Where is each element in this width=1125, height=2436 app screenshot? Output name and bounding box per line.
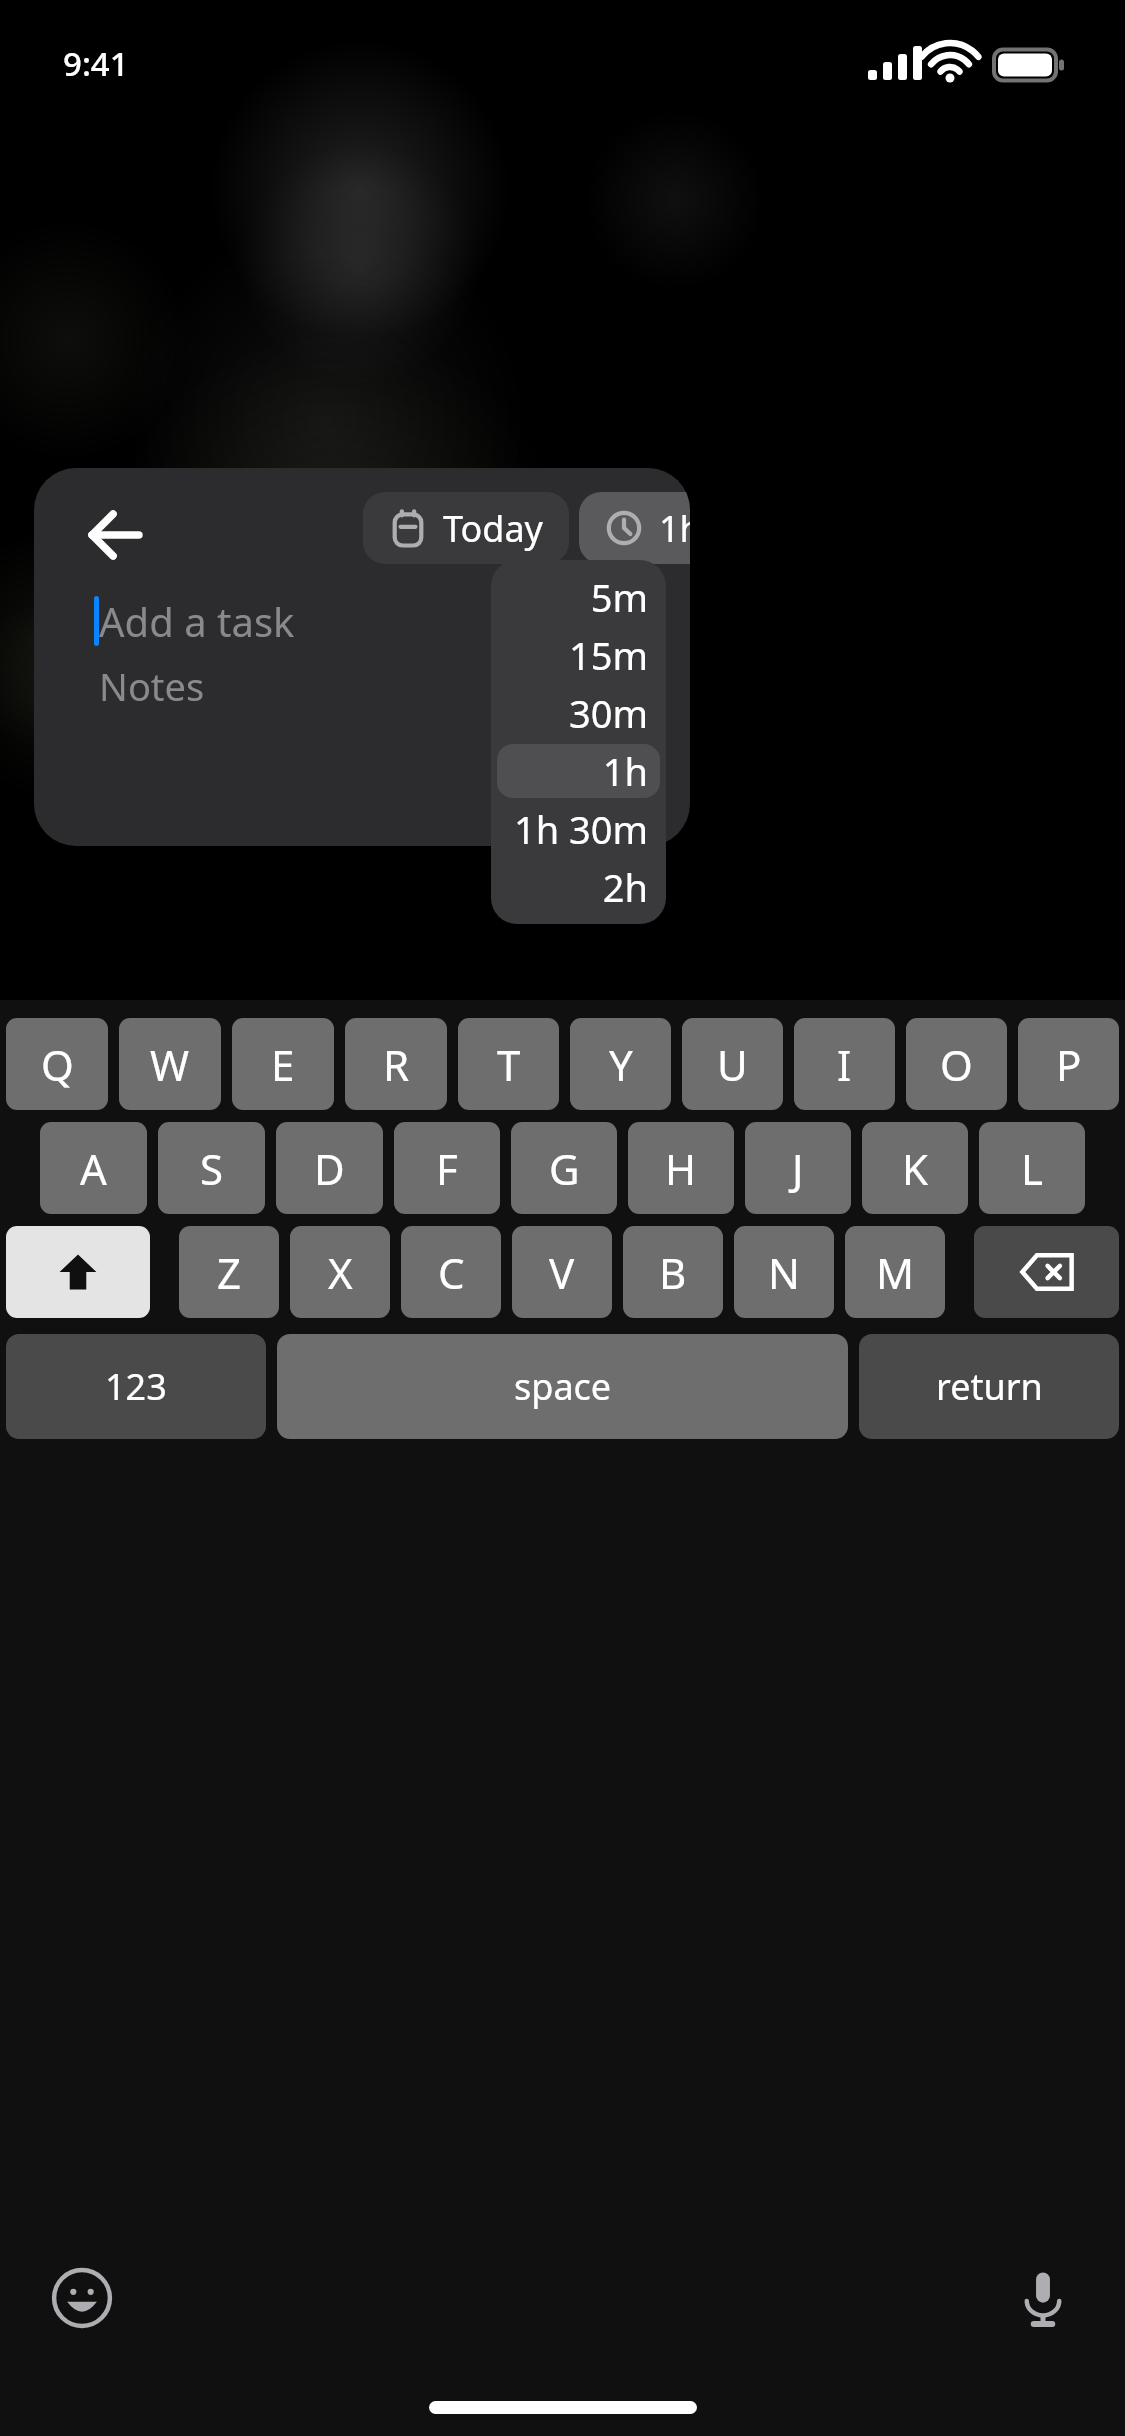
button[interactable]: 1h <box>579 492 690 564</box>
staticText: space <box>514 1362 612 1411</box>
button[interactable]: O <box>906 1018 1007 1110</box>
staticText: W <box>150 1036 190 1093</box>
button[interactable]: C <box>401 1226 501 1318</box>
button[interactable]: L <box>979 1122 1085 1214</box>
staticText: K <box>902 1140 928 1197</box>
button[interactable]: Notes <box>99 660 205 712</box>
staticText: 5m <box>590 571 648 623</box>
button[interactable]: Emoji <box>32 2248 132 2348</box>
button[interactable]: M <box>845 1226 945 1318</box>
button[interactable]: I <box>794 1018 895 1110</box>
button[interactable]: J <box>745 1122 851 1214</box>
staticText: 1h <box>602 745 648 797</box>
staticText: G <box>549 1140 580 1197</box>
button[interactable]: B <box>623 1226 723 1318</box>
staticText: P <box>1056 1036 1082 1093</box>
button[interactable]: P <box>1018 1018 1119 1110</box>
button[interactable]: space <box>277 1334 848 1439</box>
button[interactable]: W <box>119 1018 221 1110</box>
button[interactable]: 1h 30m <box>497 802 660 856</box>
staticText: R <box>383 1036 410 1093</box>
button[interactable]: 30m <box>497 686 660 740</box>
button[interactable]: Shift <box>6 1226 150 1318</box>
staticText: Z <box>217 1244 242 1301</box>
button[interactable]: H <box>628 1122 734 1214</box>
staticText: N <box>768 1244 800 1301</box>
button[interactable]: Today <box>363 492 569 564</box>
staticText: T <box>497 1036 521 1093</box>
staticText: X <box>328 1244 353 1301</box>
staticText: 2h <box>602 861 648 913</box>
button[interactable]: Back <box>68 488 162 582</box>
button[interactable]: V <box>512 1226 612 1318</box>
button[interactable]: F <box>394 1122 500 1214</box>
button[interactable]: E <box>232 1018 334 1110</box>
button[interactable]: K <box>862 1122 968 1214</box>
staticText: J <box>792 1140 804 1197</box>
staticText: U <box>717 1036 748 1093</box>
button[interactable]: T <box>458 1018 559 1110</box>
staticText: B <box>659 1244 687 1301</box>
staticText: E <box>271 1036 295 1093</box>
button[interactable]: 5m <box>497 570 660 624</box>
staticText: 123 <box>105 1362 167 1411</box>
staticText: L <box>1021 1140 1044 1197</box>
staticText: Y <box>609 1036 633 1093</box>
button[interactable]: 15m <box>497 628 660 682</box>
staticText: 15m <box>568 629 648 681</box>
staticText: S <box>200 1140 224 1197</box>
staticText: Add a task <box>99 594 295 648</box>
button[interactable]: N <box>734 1226 834 1318</box>
staticText: Q <box>41 1036 74 1093</box>
button[interactable]: A <box>40 1122 147 1214</box>
staticText: D <box>314 1140 345 1197</box>
staticText: H <box>665 1140 697 1197</box>
button[interactable]: return <box>859 1334 1119 1439</box>
staticText: Today <box>443 504 543 553</box>
button[interactable]: Backspace <box>974 1226 1119 1318</box>
staticText: O <box>940 1036 973 1093</box>
staticText: C <box>438 1244 465 1301</box>
staticText: return <box>936 1362 1043 1411</box>
button[interactable]: Z <box>179 1226 279 1318</box>
staticText: V <box>549 1244 575 1301</box>
button[interactable]: R <box>345 1018 447 1110</box>
staticText: 1h 30m <box>513 803 648 855</box>
button[interactable]: X <box>290 1226 390 1318</box>
button[interactable]: Dictation <box>993 2248 1093 2348</box>
button[interactable]: G <box>511 1122 617 1214</box>
button[interactable]: 1h <box>497 744 660 798</box>
button[interactable]: 2h <box>497 860 660 914</box>
button[interactable]: 123 <box>6 1334 266 1439</box>
button[interactable]: D <box>276 1122 383 1214</box>
staticText: I <box>837 1036 852 1093</box>
staticText: A <box>80 1140 107 1197</box>
button[interactable]: Q <box>6 1018 108 1110</box>
staticText: 9:41 <box>63 41 129 86</box>
staticText: F <box>436 1140 458 1197</box>
staticText: 1h <box>659 504 690 553</box>
button[interactable]: Y <box>570 1018 671 1110</box>
staticText: 30m <box>568 687 648 739</box>
staticText: M <box>876 1244 915 1301</box>
button[interactable]: S <box>158 1122 265 1214</box>
button[interactable]: U <box>682 1018 783 1110</box>
